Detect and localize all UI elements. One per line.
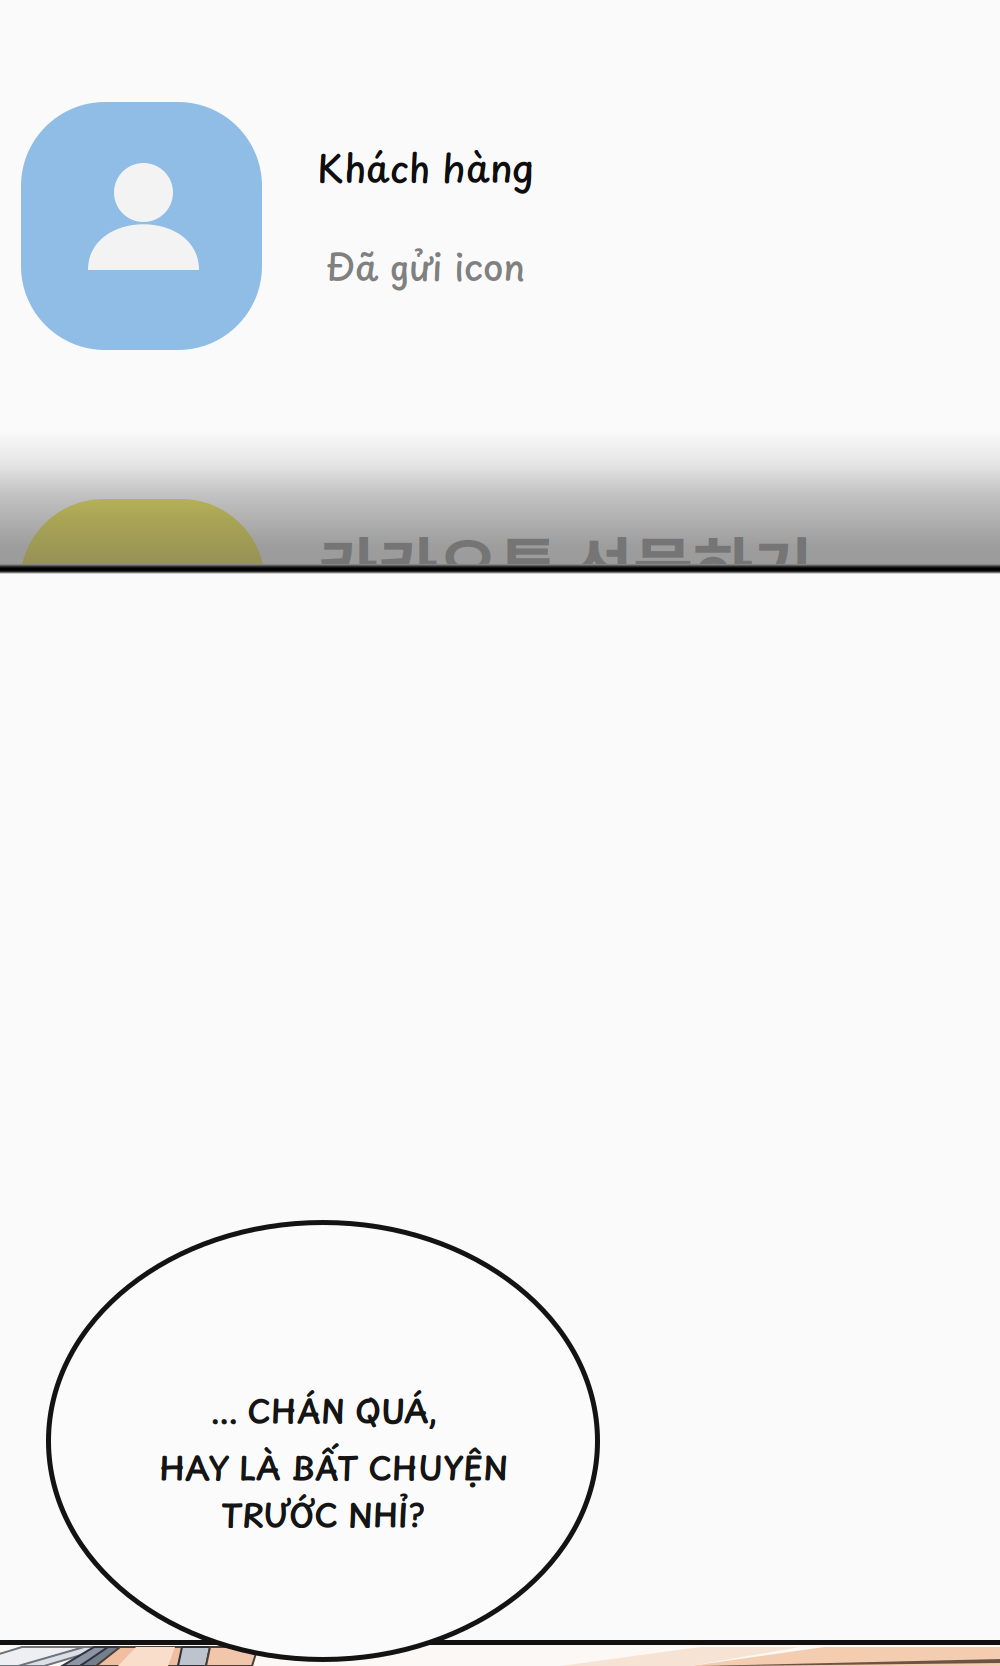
staticText: HAY LÀ BẤT CHUYỆN xyxy=(159,1443,508,1491)
staticText: ... CHÁN QUÁ, xyxy=(211,1386,437,1434)
staticText: Khách hàng xyxy=(317,139,534,195)
button[interactable]: Khách hàng xyxy=(0,30,1000,420)
staticText: Đã gửi icon xyxy=(326,239,526,293)
staticText: TRƯỚC NHỈ? xyxy=(221,1490,425,1538)
staticText: 카카오톡 선물하기 xyxy=(318,516,813,611)
